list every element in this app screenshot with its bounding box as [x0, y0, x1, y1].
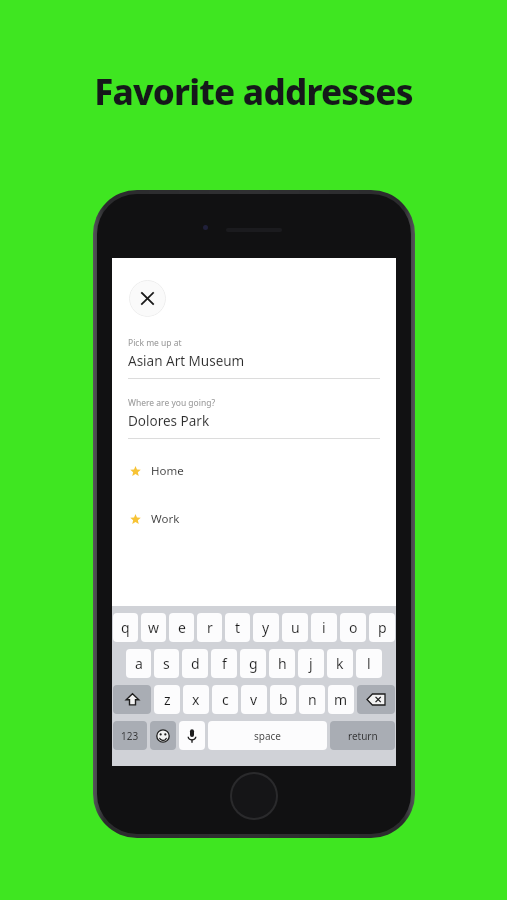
button[interactable]: h [269, 649, 295, 678]
button[interactable]: q [113, 613, 138, 642]
button[interactable]: w [141, 613, 166, 642]
staticText: i [322, 618, 326, 637]
button[interactable]: Home [112, 463, 396, 479]
button[interactable]: Close [129, 280, 166, 317]
staticText: y [262, 618, 270, 637]
staticText: v [250, 690, 258, 709]
staticText: Home [151, 463, 184, 479]
staticText: n [308, 690, 317, 709]
staticText: k [336, 654, 344, 673]
button[interactable]: l [356, 649, 382, 678]
button[interactable]: 123 [113, 721, 147, 750]
button[interactable]: d [182, 649, 208, 678]
button[interactable]: Pick me up at [112, 337, 396, 379]
staticText: return [348, 729, 378, 743]
staticText: Dolores Park [128, 412, 210, 430]
staticText: e [178, 618, 186, 637]
button[interactable]: n [299, 685, 325, 714]
button[interactable]: m [328, 685, 354, 714]
button[interactable]: space [208, 721, 327, 750]
button[interactable]: y [253, 613, 279, 642]
button[interactable]: f [211, 649, 237, 678]
button[interactable]: i [311, 613, 337, 642]
button[interactable]: return [330, 721, 395, 750]
button[interactable]: v [241, 685, 267, 714]
button[interactable]: Voice input [179, 721, 205, 750]
staticText: o [349, 618, 358, 637]
staticText: u [291, 618, 300, 637]
button[interactable]: z [154, 685, 180, 714]
staticText: q [121, 618, 130, 637]
staticText: t [235, 618, 241, 637]
button[interactable]: Backspace [357, 685, 395, 714]
button[interactable]: t [225, 613, 250, 642]
button[interactable]: o [340, 613, 366, 642]
staticText: z [164, 690, 171, 709]
staticText: Asian Art Museum [128, 352, 245, 370]
button[interactable]: x [183, 685, 209, 714]
button[interactable]: c [212, 685, 238, 714]
staticText: Where are you going? [128, 397, 216, 409]
button[interactable]: Work [112, 511, 396, 527]
staticText: p [378, 618, 387, 637]
staticText: Work [151, 511, 180, 527]
staticText: r [207, 618, 213, 637]
button[interactable]: Where are you going? [112, 397, 396, 439]
staticText: Favorite addresses [0, 68, 507, 116]
button[interactable]: j [298, 649, 324, 678]
staticText: 123 [121, 729, 139, 743]
button[interactable]: b [270, 685, 296, 714]
staticText: x [192, 690, 200, 709]
staticText: f [222, 654, 227, 673]
button[interactable]: Shift [113, 685, 151, 714]
button[interactable]: a [126, 649, 151, 678]
staticText: a [135, 654, 143, 673]
staticText: space [254, 729, 281, 743]
button[interactable]: Emoji [150, 721, 176, 750]
button[interactable]: s [154, 649, 179, 678]
staticText: Pick me up at [128, 337, 182, 349]
staticText: h [278, 654, 287, 673]
staticText: m [334, 690, 348, 709]
button[interactable]: r [197, 613, 222, 642]
button[interactable]: Home [230, 772, 278, 820]
staticText: l [367, 654, 371, 673]
button[interactable]: p [369, 613, 395, 642]
button[interactable]: u [282, 613, 308, 642]
staticText: g [249, 654, 258, 673]
button[interactable]: k [327, 649, 353, 678]
button[interactable]: e [169, 613, 194, 642]
staticText: d [191, 654, 200, 673]
staticText: s [163, 654, 170, 673]
staticText: c [222, 690, 229, 709]
button[interactable]: g [240, 649, 266, 678]
staticText: w [148, 618, 160, 637]
staticText: b [279, 690, 288, 709]
staticText: j [309, 654, 313, 673]
